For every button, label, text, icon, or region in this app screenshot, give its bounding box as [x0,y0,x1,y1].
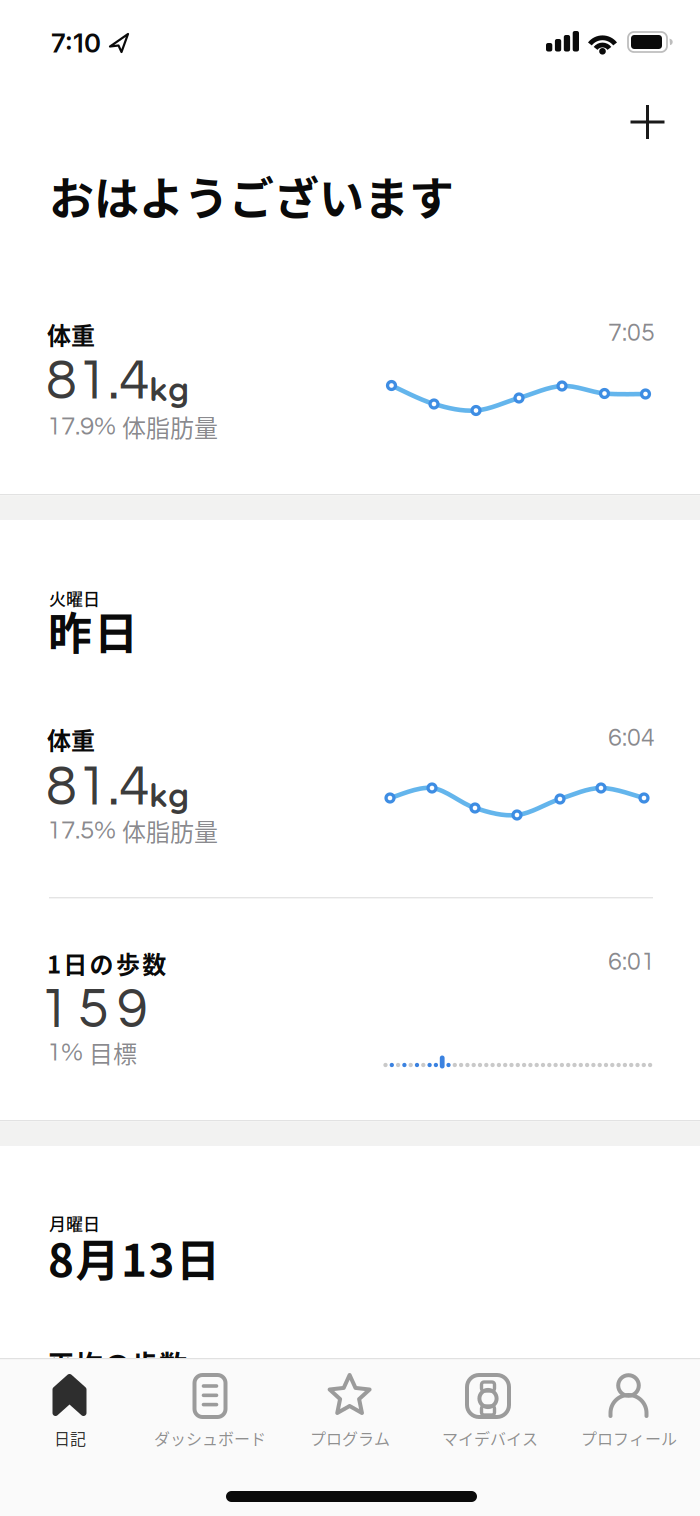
staticText: ダッシュボード [154,1426,266,1450]
staticText: 月曜日 [49,1211,100,1235]
staticText: 6:01 [608,949,655,975]
staticText: kg [149,368,189,409]
staticText: 昨日 [48,599,138,662]
staticText: 1% [47,1039,89,1066]
staticText: マイデバイス [442,1426,538,1450]
button[interactable]: 体重 [0,310,700,460]
staticText: 81.4 [46,353,150,410]
staticText: 1日の歩数 [47,946,166,980]
staticText: 17.9% [47,413,122,440]
staticText: プログラム [310,1426,390,1450]
staticText: 7:10 [51,27,101,59]
staticText: 体脂肪量 [122,409,218,444]
button[interactable] [420,1358,560,1468]
staticText: 159 [39,981,148,1039]
button[interactable] [140,1358,280,1468]
button[interactable] [280,1358,420,1468]
staticText: 平均の歩数 [47,1344,187,1384]
staticText: 17.5% [47,817,122,844]
staticText: 目標 [89,1035,137,1070]
staticText: 日記 [54,1426,86,1450]
staticText: 7:05 [608,320,655,346]
staticText: 6:04 [608,725,655,751]
staticText: 体脂肪量 [122,813,218,848]
staticText: 体重 [47,317,95,351]
staticText: おはようございます [49,163,454,229]
button[interactable] [0,1358,140,1468]
staticText: プロフィール [581,1426,677,1450]
button[interactable]: 1日の歩数 [0,936,700,1086]
button[interactable]: 体重 [0,714,700,864]
button[interactable] [625,100,669,144]
staticText: 8月13日 [48,1226,220,1289]
button[interactable] [560,1358,700,1468]
staticText: 体重 [47,722,95,756]
staticText: 81.4 [46,759,150,816]
staticText: kg [149,774,189,815]
staticText: 火曜日 [49,586,100,610]
